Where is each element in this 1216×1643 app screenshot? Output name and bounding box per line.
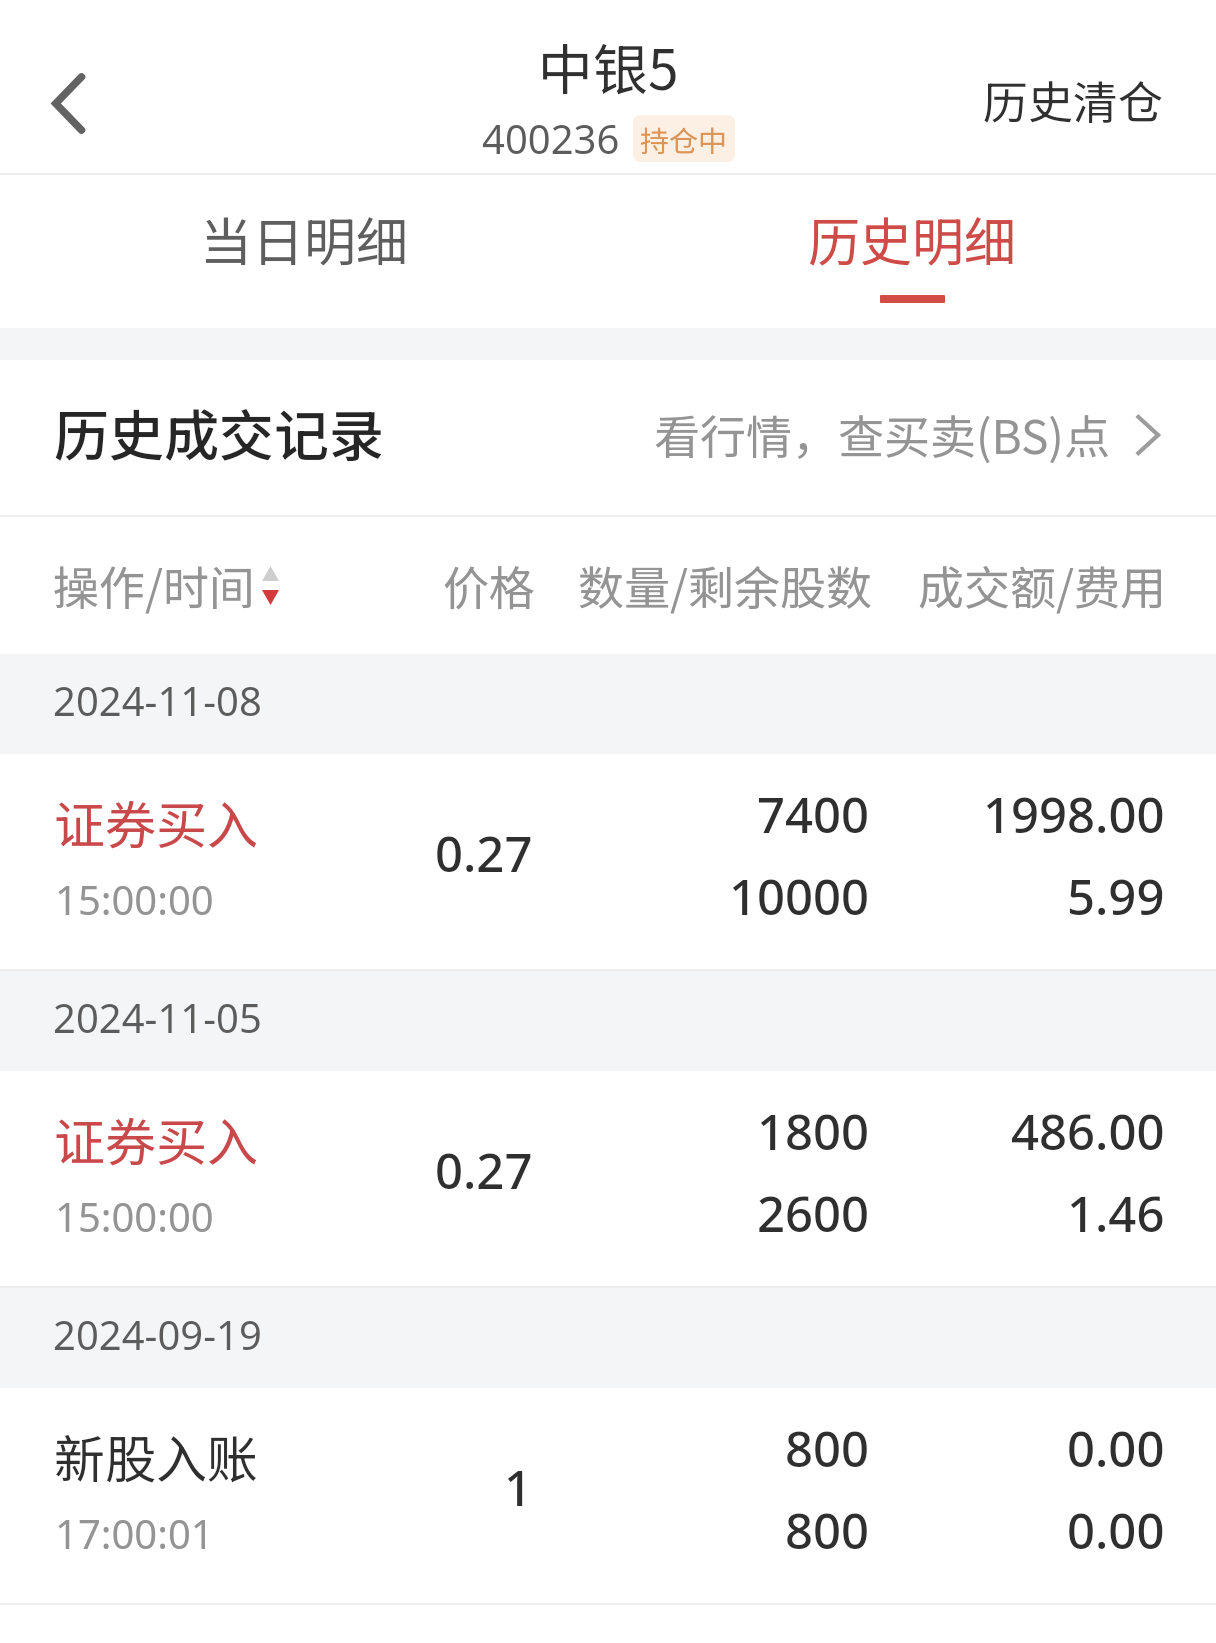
staticText: 1.46 [1067, 1180, 1165, 1247]
staticText: 1 [504, 1454, 533, 1521]
staticText: 看行情，查买卖(BS)点 [654, 401, 1110, 468]
button[interactable]: 历史清仓 [983, 67, 1164, 132]
staticText: 1800 [757, 1098, 870, 1165]
staticText: 历史清仓 [983, 67, 1164, 132]
button[interactable]: 新股入账 [0, 1388, 1216, 1605]
staticText: 中银5 [538, 26, 679, 106]
staticText: 0.27 [435, 1137, 533, 1204]
staticText: 7400 [757, 781, 870, 848]
staticText: 价格 [443, 552, 535, 619]
staticText: 0.00 [1067, 1415, 1165, 1482]
button[interactable]: 历史明细 [608, 175, 1216, 328]
staticText: 操作/时间 [53, 552, 256, 619]
staticText: 15:00:00 [55, 872, 214, 926]
staticText: 486.00 [1011, 1098, 1165, 1165]
staticText: 当日明细 [200, 201, 409, 276]
staticText: 证券买入 [54, 785, 259, 859]
button[interactable]: 证券买入 [0, 1071, 1216, 1288]
staticText: 800 [785, 1497, 870, 1564]
staticText: 10000 [729, 863, 870, 930]
button[interactable]: Back [0, 0, 145, 175]
staticText: 历史成交记录 [54, 392, 385, 472]
staticText: 持仓中 [640, 118, 728, 160]
staticText: 17:00:01 [55, 1506, 214, 1560]
staticText: 0.27 [435, 820, 533, 887]
staticText: 2600 [757, 1180, 870, 1247]
staticText: 证券买入 [54, 1102, 259, 1176]
staticText: 1998.00 [983, 781, 1165, 848]
button[interactable]: 证券买入 [0, 754, 1216, 971]
staticText: 800 [785, 1415, 870, 1482]
staticText: 新股入账 [54, 1419, 259, 1493]
staticText: 数量/剩余股数 [578, 552, 873, 619]
staticText: 5.99 [1067, 863, 1165, 930]
staticText: 0.00 [1067, 1497, 1165, 1564]
button[interactable]: 当日明细 [0, 175, 608, 328]
staticText: 400236 [482, 111, 620, 165]
staticText: 成交额/费用 [918, 552, 1167, 619]
staticText: 15:00:00 [55, 1189, 214, 1243]
staticText: 历史明细 [808, 201, 1017, 276]
staticText: 2024-09-19 [53, 1307, 262, 1361]
staticText: 2024-11-05 [53, 990, 262, 1044]
staticText: 2024-11-08 [53, 673, 262, 727]
button[interactable]: 看行情，查买卖(BS)点 [654, 401, 1160, 468]
